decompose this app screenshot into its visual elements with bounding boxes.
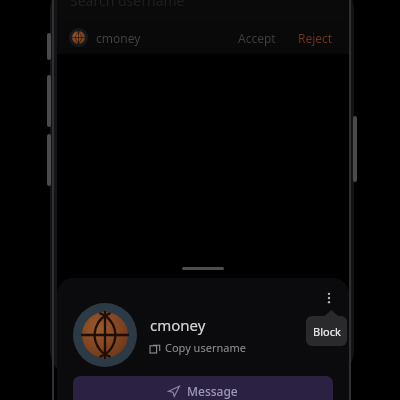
button[interactable]: More options [317,286,341,310]
button[interactable]: Copy username [150,340,246,355]
staticText: Block [313,324,341,339]
button[interactable]: Profile photo [73,303,137,367]
staticText: cmoney [150,315,206,335]
button[interactable]: Message [73,376,333,400]
staticText: Copy username [165,340,246,355]
button[interactable]: Block [306,316,347,346]
staticText: Message [187,383,238,399]
button[interactable]: Accept [234,26,280,50]
staticText: cmoney [96,30,141,46]
button[interactable]: Reject [294,26,337,50]
staticText: Accept [238,30,276,46]
staticText: Search username [70,0,185,10]
button[interactable]: cmoney [57,21,349,54]
staticText: Reject [298,30,333,46]
